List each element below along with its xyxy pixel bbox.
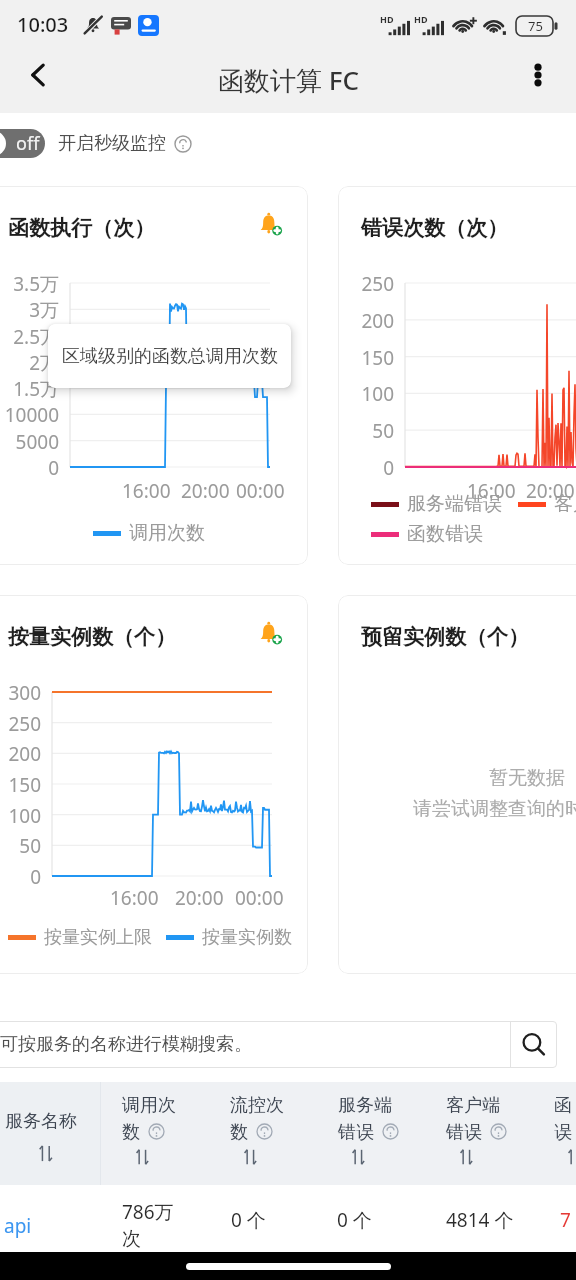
staticText: off: [16, 131, 40, 156]
staticText: 调用次数: [129, 521, 205, 545]
staticText: 客户端错误: [554, 492, 576, 516]
staticText: 数: [122, 1121, 140, 1144]
staticText: 16:00: [467, 478, 516, 504]
staticText: 20:00: [181, 478, 230, 504]
button[interactable]: Create alarm: [253, 207, 289, 243]
staticText: 00:00: [236, 478, 285, 504]
button[interactable]: 服务名称: [0, 1082, 100, 1185]
staticText: 7: [560, 1207, 571, 1233]
staticText: 0 个: [231, 1207, 266, 1233]
staticText: 300: [0, 680, 41, 706]
button[interactable]: 调用次: [122, 1082, 230, 1185]
staticText: 请尝试调整查询的时间范围: [413, 797, 576, 821]
staticText: 错误: [338, 1121, 374, 1144]
staticText: 4814 个: [446, 1207, 514, 1233]
staticText: 暂无数据: [489, 766, 565, 790]
staticText: 100: [338, 381, 394, 407]
staticText: 250: [338, 271, 394, 297]
staticText: 预留实例数（个）: [361, 624, 529, 650]
staticText: 250: [0, 711, 41, 737]
staticText: 10:03: [17, 11, 69, 38]
button[interactable]: More options: [500, 50, 576, 100]
staticText: 1.5万: [0, 376, 59, 402]
staticText: 150: [0, 772, 41, 798]
button[interactable]: 按量实例数（个）: [0, 595, 308, 974]
staticText: 200: [338, 308, 394, 334]
staticText: 00:00: [235, 885, 284, 911]
staticText: 0: [0, 455, 59, 481]
staticText: 20:00: [526, 478, 575, 504]
button[interactable]: 错误次数（次）: [338, 186, 576, 565]
button[interactable]: 流控次: [230, 1082, 338, 1185]
staticText: 数: [230, 1121, 248, 1144]
button[interactable]: 客户端: [446, 1082, 554, 1185]
staticText: 20:00: [175, 885, 224, 911]
button[interactable]: api: [0, 1185, 100, 1252]
staticText: 0 个: [337, 1207, 372, 1233]
staticText: 3.5万: [0, 271, 59, 297]
staticText: 50: [338, 418, 394, 444]
staticText: 75: [528, 17, 543, 35]
staticText: api: [4, 1213, 32, 1239]
button[interactable]: Search: [511, 1021, 557, 1068]
button[interactable]: Create alarm: [253, 616, 289, 652]
staticText: 开启秒级监控: [58, 132, 166, 155]
button[interactable]: Back: [0, 50, 76, 100]
staticText: 按量实例上限: [44, 926, 152, 949]
staticText: 流控次: [230, 1094, 284, 1117]
staticText: 服务端: [338, 1094, 392, 1117]
button[interactable]: 预留实例数（个）: [338, 595, 576, 974]
staticText: 2万: [0, 350, 59, 376]
staticText: 错误: [446, 1121, 482, 1144]
staticText: 函: [554, 1094, 572, 1117]
staticText: 客户端: [446, 1094, 500, 1117]
staticText: 5000: [0, 429, 59, 455]
staticText: 786万 次: [122, 1199, 174, 1251]
staticText: 函数计算 FC: [218, 62, 359, 98]
button[interactable]: 函数执行（次）: [0, 186, 308, 565]
staticText: 100: [0, 803, 41, 829]
staticText: 函数执行（次）: [8, 215, 155, 241]
staticText: 0: [338, 455, 394, 481]
button[interactable]: 函: [554, 1082, 576, 1185]
staticText: 200: [0, 741, 41, 767]
staticText: 10000: [0, 402, 59, 428]
staticText: 服务端错误: [407, 492, 502, 516]
staticText: 16:00: [110, 885, 159, 911]
staticText: 按量实例数: [202, 926, 292, 949]
button[interactable]: off: [0, 129, 45, 158]
button[interactable]: 服务端: [338, 1082, 446, 1185]
staticText: 150: [338, 345, 394, 371]
staticText: HD: [380, 13, 394, 25]
staticText: 50: [0, 833, 41, 859]
staticText: 16:00: [122, 478, 171, 504]
staticText: 2.5万: [0, 324, 59, 350]
staticText: 可按服务的名称进行模糊搜索。: [0, 1033, 252, 1056]
staticText: 3万: [0, 297, 59, 323]
staticText: 按量实例数（个）: [8, 624, 176, 650]
staticText: 错误次数（次）: [361, 215, 508, 241]
staticText: 误: [554, 1121, 572, 1144]
staticText: 函数错误: [407, 522, 483, 546]
staticText: 0: [0, 864, 41, 890]
staticText: 区域级别的函数总调用次数: [62, 345, 278, 368]
staticText: 服务名称: [5, 1110, 77, 1133]
staticText: 调用次: [122, 1094, 176, 1117]
staticText: HD: [414, 13, 428, 25]
